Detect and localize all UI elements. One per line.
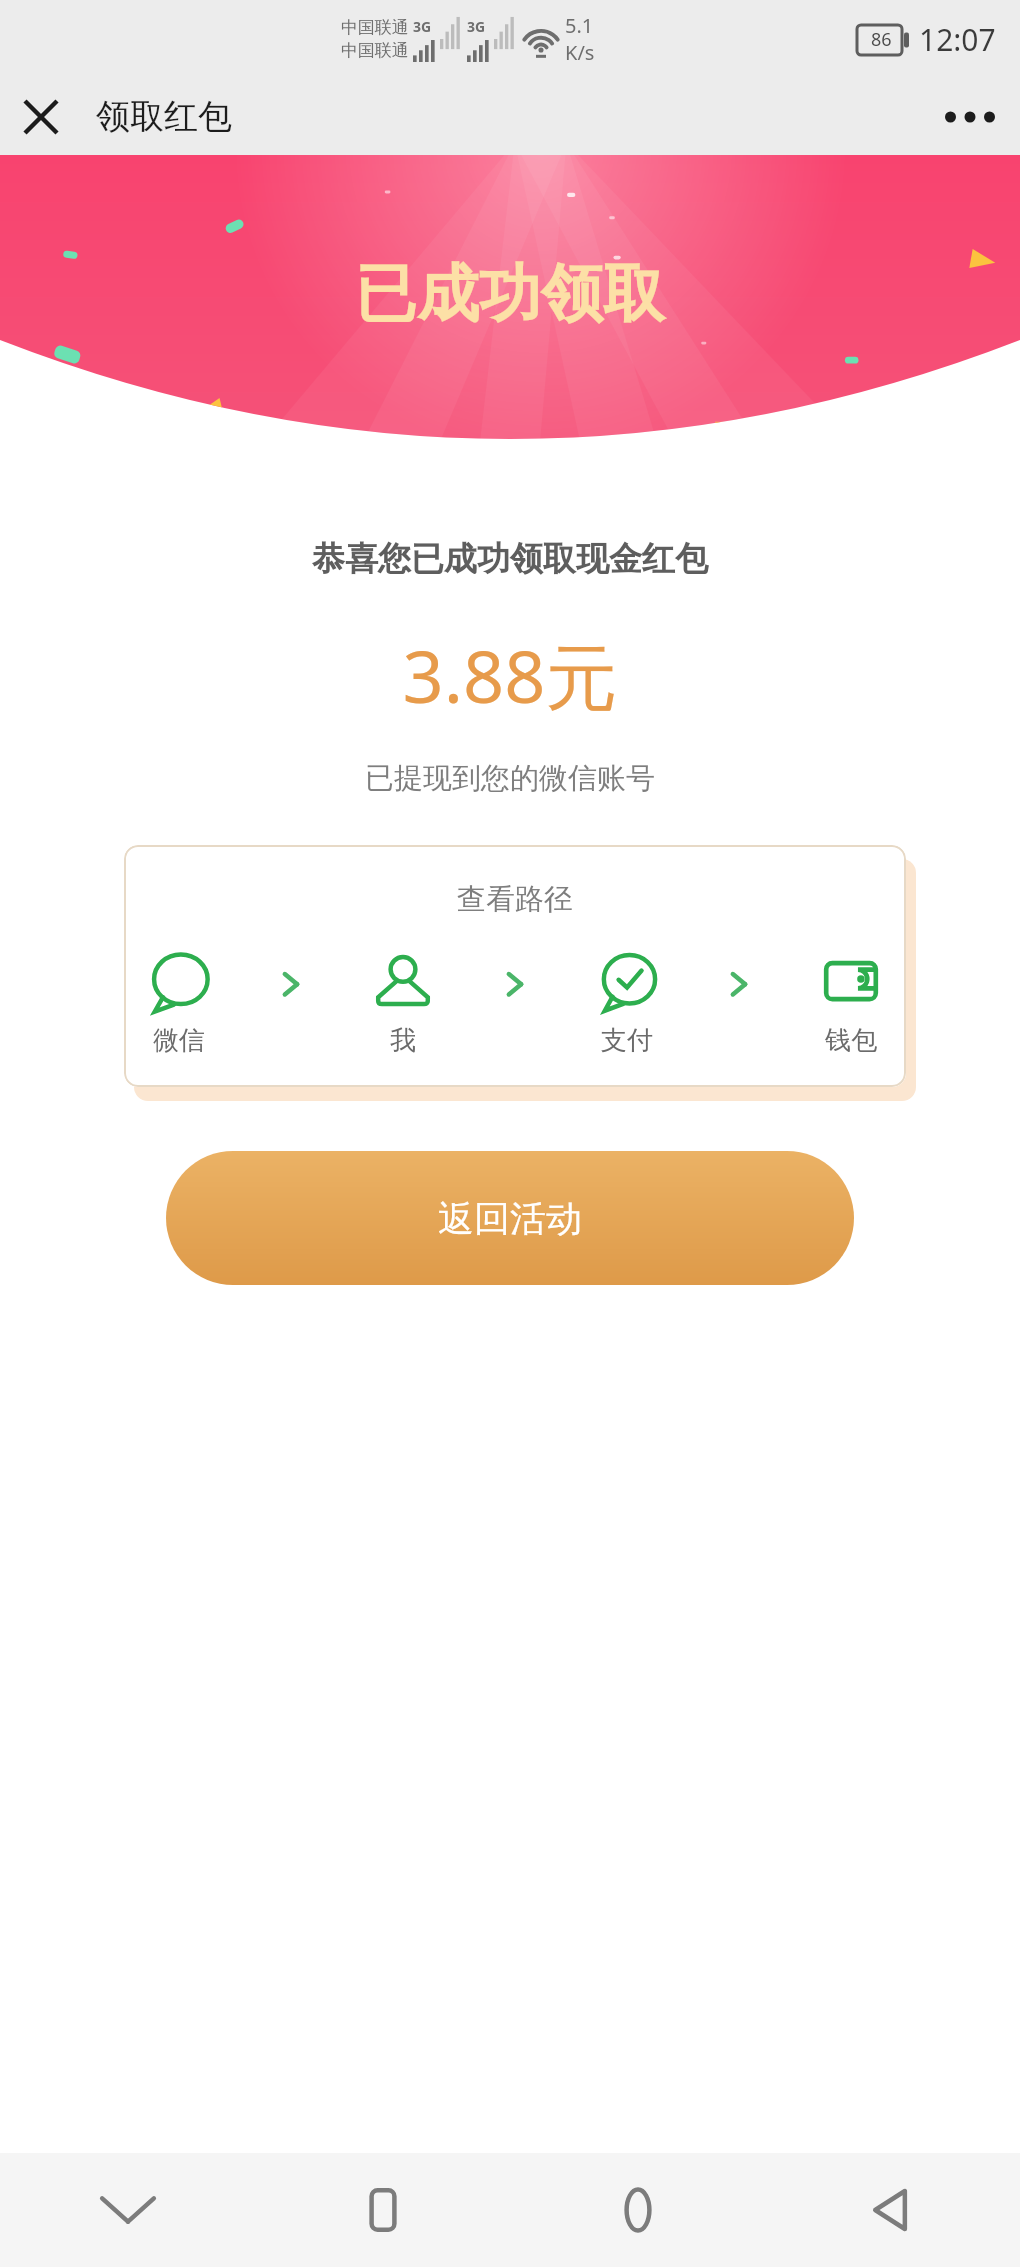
staticText: 3G	[467, 17, 486, 36]
button[interactable]: Recent apps	[255, 2153, 510, 2267]
button[interactable]: 支付	[596, 952, 658, 1057]
button[interactable]: Back	[765, 2153, 1020, 2267]
staticText: 返回活动	[438, 1196, 582, 1241]
staticText: 查看路径	[457, 881, 573, 918]
button[interactable]: More options	[934, 81, 1006, 153]
button[interactable]: Collapse keyboard	[0, 2153, 255, 2267]
staticText: 钱包	[825, 1024, 877, 1057]
staticText: 3G	[413, 17, 432, 36]
staticText: 我	[390, 1024, 416, 1057]
staticText: 已提现到您的微信账号	[0, 760, 1020, 797]
button[interactable]: 钱包	[820, 952, 882, 1057]
staticText: 已成功领取	[0, 255, 1020, 333]
staticText: 恭喜您已成功领取现金红包	[0, 538, 1020, 580]
button[interactable]: Home	[510, 2153, 765, 2267]
button[interactable]: Close	[10, 86, 72, 148]
button[interactable]: 我	[372, 952, 434, 1057]
staticText: 5.1	[565, 12, 594, 39]
staticText: 领取红包	[96, 95, 232, 138]
staticText: 86	[871, 27, 892, 52]
button[interactable]: 查看路径	[124, 845, 906, 1087]
staticText: 中国联通	[341, 40, 409, 61]
staticText: 3.88元	[0, 626, 1020, 724]
staticText: 微信	[153, 1024, 205, 1057]
staticText: 支付	[601, 1024, 653, 1057]
staticText: 中国联通	[341, 17, 409, 38]
button[interactable]: 返回活动	[166, 1151, 854, 1285]
staticText: K/s	[565, 39, 595, 66]
staticText: 12:07	[919, 19, 996, 60]
button[interactable]: 微信	[148, 952, 210, 1057]
